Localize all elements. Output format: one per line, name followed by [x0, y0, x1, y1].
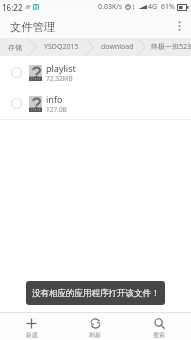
button[interactable]: YSDQ2015	[44, 38, 79, 56]
button[interactable]: More options	[167, 14, 191, 38]
staticText: 61%	[161, 2, 175, 12]
button[interactable]: 存储	[8, 38, 22, 56]
staticText: 存储	[8, 43, 22, 52]
staticText: 搜索	[153, 331, 165, 339]
button[interactable]: 新建	[0, 313, 63, 340]
button[interactable]: 终极一班523	[151, 38, 191, 56]
button[interactable]: info	[0, 88, 191, 119]
staticText: 72.32MB	[46, 74, 73, 83]
staticText: 4G	[148, 2, 158, 12]
staticText: 新建	[26, 331, 38, 339]
staticText: 没有相应的应用程序打开该文件！	[32, 288, 160, 299]
staticText: 0.03K/s	[98, 2, 123, 12]
staticText: 16:22	[2, 2, 23, 13]
staticText: playlist	[46, 62, 76, 74]
staticText: 文件管理	[10, 20, 56, 34]
button[interactable]: 刷新	[63, 313, 127, 340]
staticText: YSDQ2015	[44, 42, 79, 52]
staticText: 终极一班523	[151, 42, 191, 52]
staticText: info	[46, 93, 63, 105]
staticText: download	[101, 42, 134, 52]
button[interactable]: playlist	[0, 57, 191, 88]
button[interactable]: 搜索	[127, 313, 191, 340]
staticText: 刷新	[89, 331, 101, 339]
button[interactable]: download	[101, 38, 134, 56]
staticText: 127.0B	[46, 105, 67, 114]
